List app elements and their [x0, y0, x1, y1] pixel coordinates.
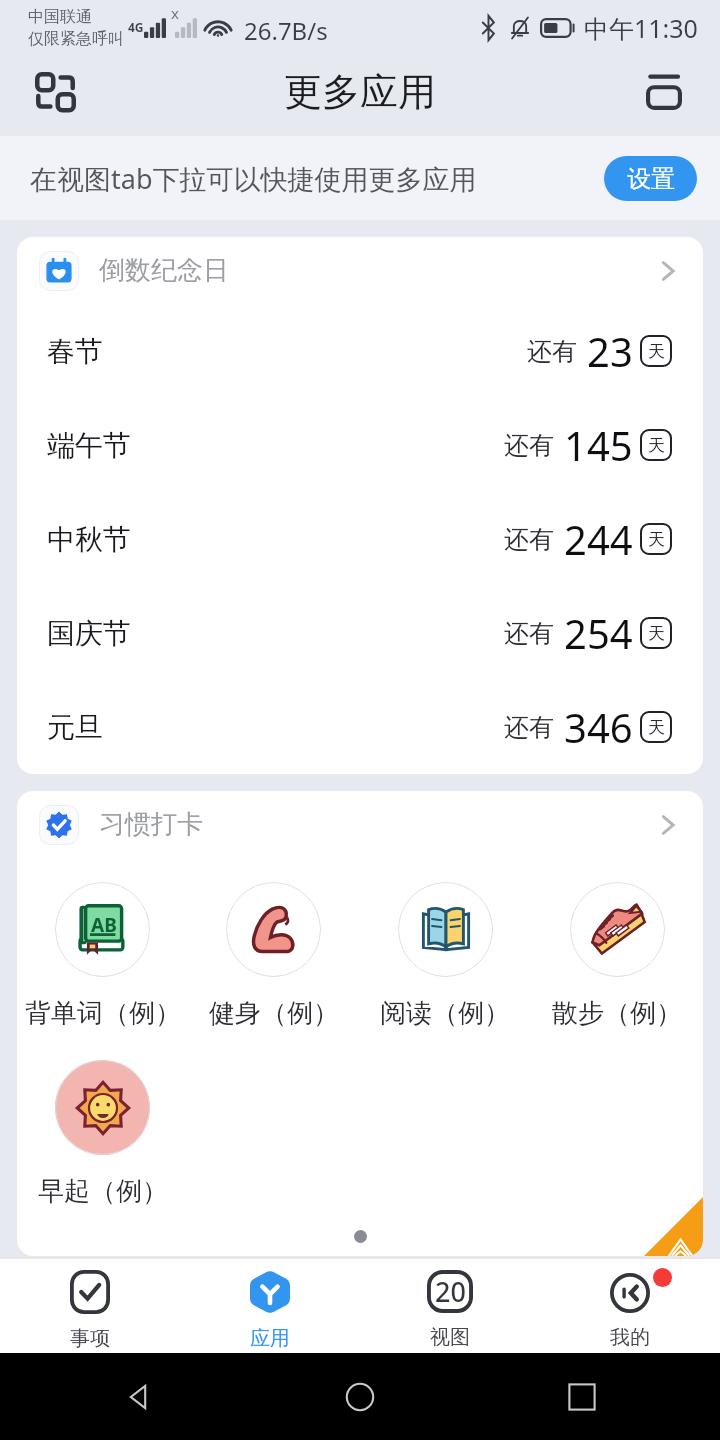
button[interactable]: 元旦: [17, 680, 703, 774]
staticText: 背单词（例）: [25, 997, 181, 1030]
staticText: 端午节: [47, 428, 131, 463]
button[interactable]: 我的: [540, 1259, 720, 1353]
staticText: AB: [91, 912, 117, 938]
staticText: 还有: [504, 430, 554, 461]
button[interactable]: 健身（例）: [188, 882, 359, 1030]
staticText: 事项: [70, 1326, 110, 1351]
staticText: 还有: [527, 336, 577, 367]
staticText: 天: [648, 623, 665, 644]
button[interactable]: 国庆节: [17, 586, 703, 680]
button[interactable]: 春节: [17, 304, 703, 398]
staticText: 中秋节: [47, 522, 131, 557]
staticText: 254: [564, 606, 633, 660]
button[interactable]: 早起（例）: [17, 1060, 188, 1208]
staticText: 设置: [627, 164, 675, 194]
button[interactable]: AB: [17, 882, 188, 1030]
staticText: 天: [648, 341, 665, 362]
staticText: 145: [564, 418, 633, 472]
button[interactable]: 习惯打卡: [17, 791, 703, 858]
staticText: 346: [564, 700, 633, 754]
button[interactable]: 应用分组: [19, 56, 91, 128]
staticText: 天: [648, 529, 665, 550]
staticText: 散步（例）: [552, 997, 682, 1030]
staticText: 在视图tab下拉可以快捷使用更多应用: [30, 160, 477, 197]
staticText: 中午11:30: [584, 11, 698, 45]
staticText: 244: [564, 512, 633, 566]
staticText: 早起（例）: [38, 1175, 168, 1208]
button[interactable]: 应用: [180, 1259, 360, 1353]
staticText: 视图: [430, 1325, 470, 1350]
button[interactable]: 阅读（例）: [359, 882, 531, 1030]
staticText: 还有: [504, 618, 554, 649]
staticText: 应用: [250, 1326, 290, 1351]
button[interactable]: 端午节: [17, 398, 703, 492]
staticText: 我的: [610, 1325, 650, 1350]
staticText: 20: [435, 1273, 466, 1310]
staticText: x: [171, 3, 179, 23]
button[interactable]: 散步（例）: [531, 882, 703, 1030]
staticText: 倒数纪念日: [99, 254, 229, 287]
staticText: 元旦: [47, 710, 103, 745]
staticText: 天: [648, 717, 665, 738]
button[interactable]: 卡片视图: [628, 56, 700, 128]
button[interactable]: 倒数纪念日: [17, 237, 703, 304]
button[interactable]: 20: [360, 1259, 540, 1353]
staticText: 阅读（例）: [380, 997, 510, 1030]
button[interactable]: Recents: [554, 1369, 610, 1425]
staticText: 26.7B/s: [244, 14, 328, 47]
staticText: 还有: [504, 524, 554, 555]
staticText: 春节: [47, 334, 103, 369]
button[interactable]: Home: [332, 1369, 388, 1425]
button[interactable]: 中秋节: [17, 492, 703, 586]
staticText: 4G: [128, 19, 144, 35]
staticText: 更多应用: [284, 68, 436, 116]
staticText: 国庆节: [47, 616, 131, 651]
staticText: 还有: [504, 712, 554, 743]
staticText: 健身（例）: [209, 997, 339, 1030]
staticText: 23: [587, 324, 633, 378]
staticText: 仅限紧急呼叫: [28, 29, 124, 49]
staticText: 习惯打卡: [99, 808, 203, 841]
button[interactable]: 设置: [604, 156, 697, 201]
button[interactable]: Back: [110, 1369, 166, 1425]
button[interactable]: 事项: [0, 1259, 180, 1353]
staticText: 天: [648, 435, 665, 456]
staticText: 中国联通: [28, 7, 92, 27]
